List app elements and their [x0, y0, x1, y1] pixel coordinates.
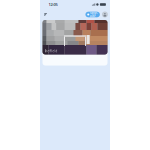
button[interactable]: Upgrade	[85, 12, 100, 17]
staticText: Upgrade	[90, 11, 98, 18]
button[interactable]: Account	[102, 11, 108, 17]
button[interactable]: Sheffield	[42, 20, 107, 65]
staticText: 12:05	[48, 2, 57, 7]
button[interactable]: Filter	[44, 11, 51, 18]
staticText: Sheffield	[44, 50, 57, 53]
